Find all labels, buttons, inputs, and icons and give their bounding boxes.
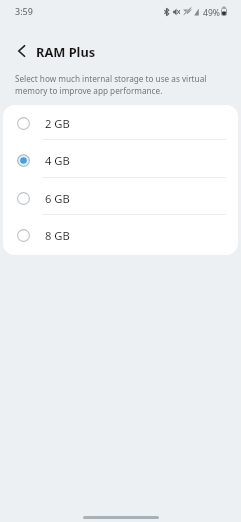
staticText: 6 GB	[45, 191, 70, 206]
staticText: 3:59	[15, 5, 33, 17]
staticText: 4 GB	[45, 153, 70, 168]
button[interactable]: 2 GB	[3, 105, 238, 142]
button[interactable]: Back	[11, 41, 31, 61]
button[interactable]: 6 GB	[3, 180, 238, 217]
staticText: 8 GB	[45, 228, 70, 243]
staticText: Select how much internal storage to use …	[15, 73, 238, 96]
staticText: 49%	[203, 7, 220, 19]
staticText: 2 GB	[45, 116, 70, 131]
button[interactable]: 4 GB	[3, 142, 238, 179]
staticText: RAM Plus	[36, 43, 96, 60]
button[interactable]: 8 GB	[3, 217, 238, 254]
